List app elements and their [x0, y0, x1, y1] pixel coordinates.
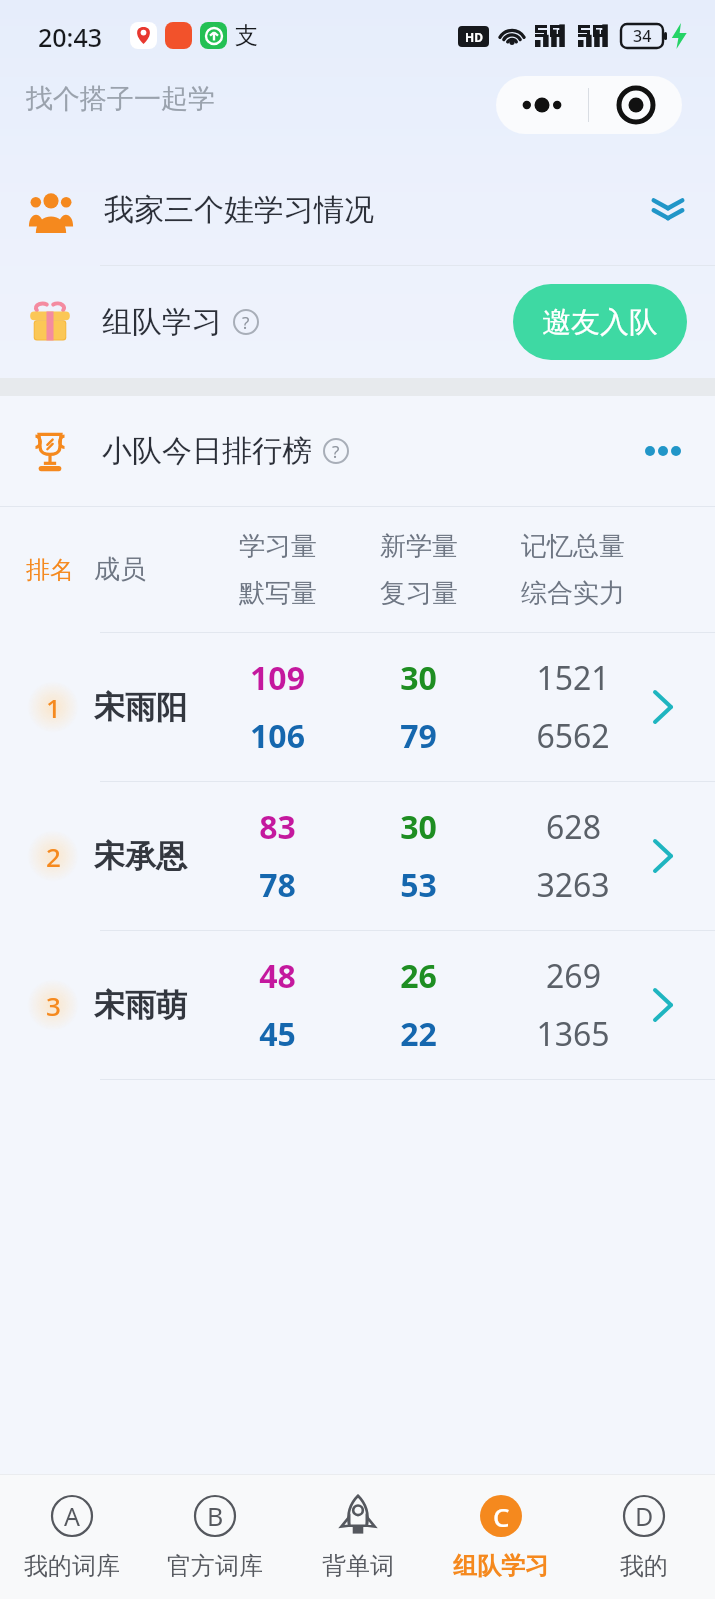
button[interactable]: 1 — [0, 633, 715, 781]
staticText: 小队今日排行榜 — [102, 432, 312, 470]
staticText: 背单词 — [322, 1551, 394, 1581]
button[interactable]: Help — [322, 437, 350, 465]
button[interactable]: More options — [641, 429, 685, 473]
other: More — [496, 76, 588, 134]
staticText: 宋承恩 — [94, 837, 187, 876]
staticText: 79 — [400, 714, 437, 758]
button[interactable]: More — [496, 76, 682, 134]
button[interactable]: Help — [232, 308, 260, 336]
staticText: 组队学习 — [453, 1551, 549, 1581]
staticText: 48 — [259, 954, 296, 998]
staticText: D — [635, 1499, 654, 1533]
staticText: 邀友入队 — [542, 304, 658, 341]
staticText: HD — [465, 29, 483, 45]
staticText: 宋雨萌 — [94, 986, 187, 1025]
staticText: A — [64, 1499, 80, 1533]
button[interactable]: 我家三个娃学习情况 — [0, 155, 715, 265]
button[interactable]: A — [0, 1475, 143, 1599]
staticText: ? — [242, 311, 250, 334]
button[interactable]: C — [429, 1475, 572, 1599]
staticText: 找个搭子一起学 — [26, 82, 215, 116]
staticText: 成员 — [94, 553, 146, 586]
staticText: B — [207, 1499, 224, 1533]
staticText: C — [493, 1499, 510, 1534]
other: Close — [589, 76, 682, 134]
button[interactable]: 邀友入队 — [513, 284, 687, 360]
staticText: 78 — [259, 863, 296, 907]
staticText: 3 — [46, 988, 61, 1023]
staticText: 3263 — [536, 863, 610, 907]
staticText: 45 — [259, 1012, 296, 1056]
staticText: 学习量 — [239, 530, 317, 563]
staticText: 我家三个娃学习情况 — [104, 191, 374, 229]
staticText: 支 — [235, 21, 258, 50]
button[interactable]: 3 — [0, 931, 715, 1079]
staticText: 26 — [400, 954, 437, 998]
staticText: 1521 — [536, 656, 610, 700]
staticText: 30 — [400, 805, 437, 849]
staticText: 269 — [546, 954, 601, 998]
staticText: 1 — [46, 690, 61, 725]
staticText: 记忆总量 — [521, 530, 625, 563]
staticText: 628 — [546, 805, 601, 849]
staticText: 53 — [400, 863, 437, 907]
staticText: 30 — [400, 656, 437, 700]
staticText: 109 — [250, 656, 305, 700]
staticText: 6562 — [536, 714, 610, 758]
button[interactable]: D — [572, 1475, 715, 1599]
staticText: 复习量 — [380, 577, 458, 610]
staticText: 排名 — [26, 555, 74, 585]
staticText: 1365 — [536, 1012, 610, 1056]
staticText: 22 — [400, 1012, 437, 1056]
staticText: 我的 — [620, 1551, 668, 1581]
staticText: 我的词库 — [24, 1551, 120, 1581]
staticText: 官方词库 — [167, 1551, 263, 1581]
staticText: 综合实力 — [521, 577, 625, 610]
button[interactable]: B — [143, 1475, 286, 1599]
staticText: 83 — [259, 805, 296, 849]
button[interactable]: 2 — [0, 782, 715, 930]
staticText: 2 — [46, 839, 61, 874]
staticText: 106 — [250, 714, 305, 758]
staticText: 组队学习 — [102, 303, 222, 341]
staticText: 20:43 — [38, 20, 103, 54]
staticText: 34 — [633, 25, 652, 47]
button[interactable]: 背单词 — [286, 1475, 429, 1599]
staticText: 新学量 — [380, 530, 458, 563]
staticText: ? — [332, 440, 340, 463]
staticText: 宋雨阳 — [94, 688, 187, 727]
other: Expand — [651, 195, 685, 225]
staticText: 默写量 — [239, 577, 317, 610]
